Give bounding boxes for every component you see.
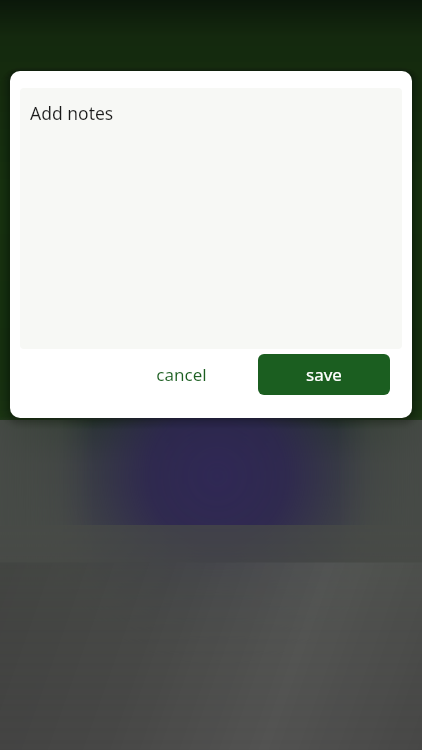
staticText: cancel [156, 363, 207, 386]
button[interactable]: Add notes [20, 88, 402, 349]
button[interactable]: save [258, 354, 390, 395]
staticText: Add notes [30, 101, 114, 125]
button[interactable]: cancel [136, 354, 226, 395]
staticText: save [306, 363, 342, 386]
